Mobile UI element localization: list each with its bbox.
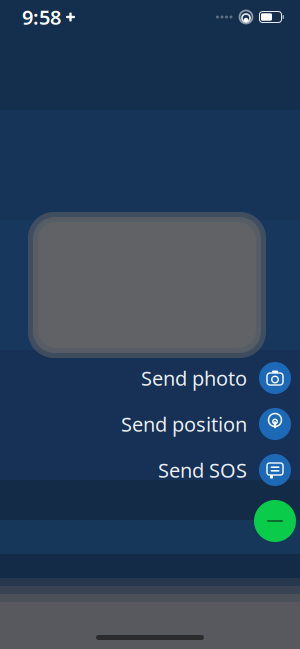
staticText: Send SOS — [158, 457, 247, 483]
staticText: Send photo — [141, 365, 247, 391]
staticText: Send position — [121, 411, 247, 437]
button[interactable]: Send SOS — [0, 454, 300, 486]
button[interactable]: Send position — [0, 408, 300, 440]
button[interactable]: Send photo — [0, 362, 300, 394]
button[interactable]: Close actions menu — [0, 500, 300, 542]
staticText: 9:58 — [22, 4, 61, 30]
